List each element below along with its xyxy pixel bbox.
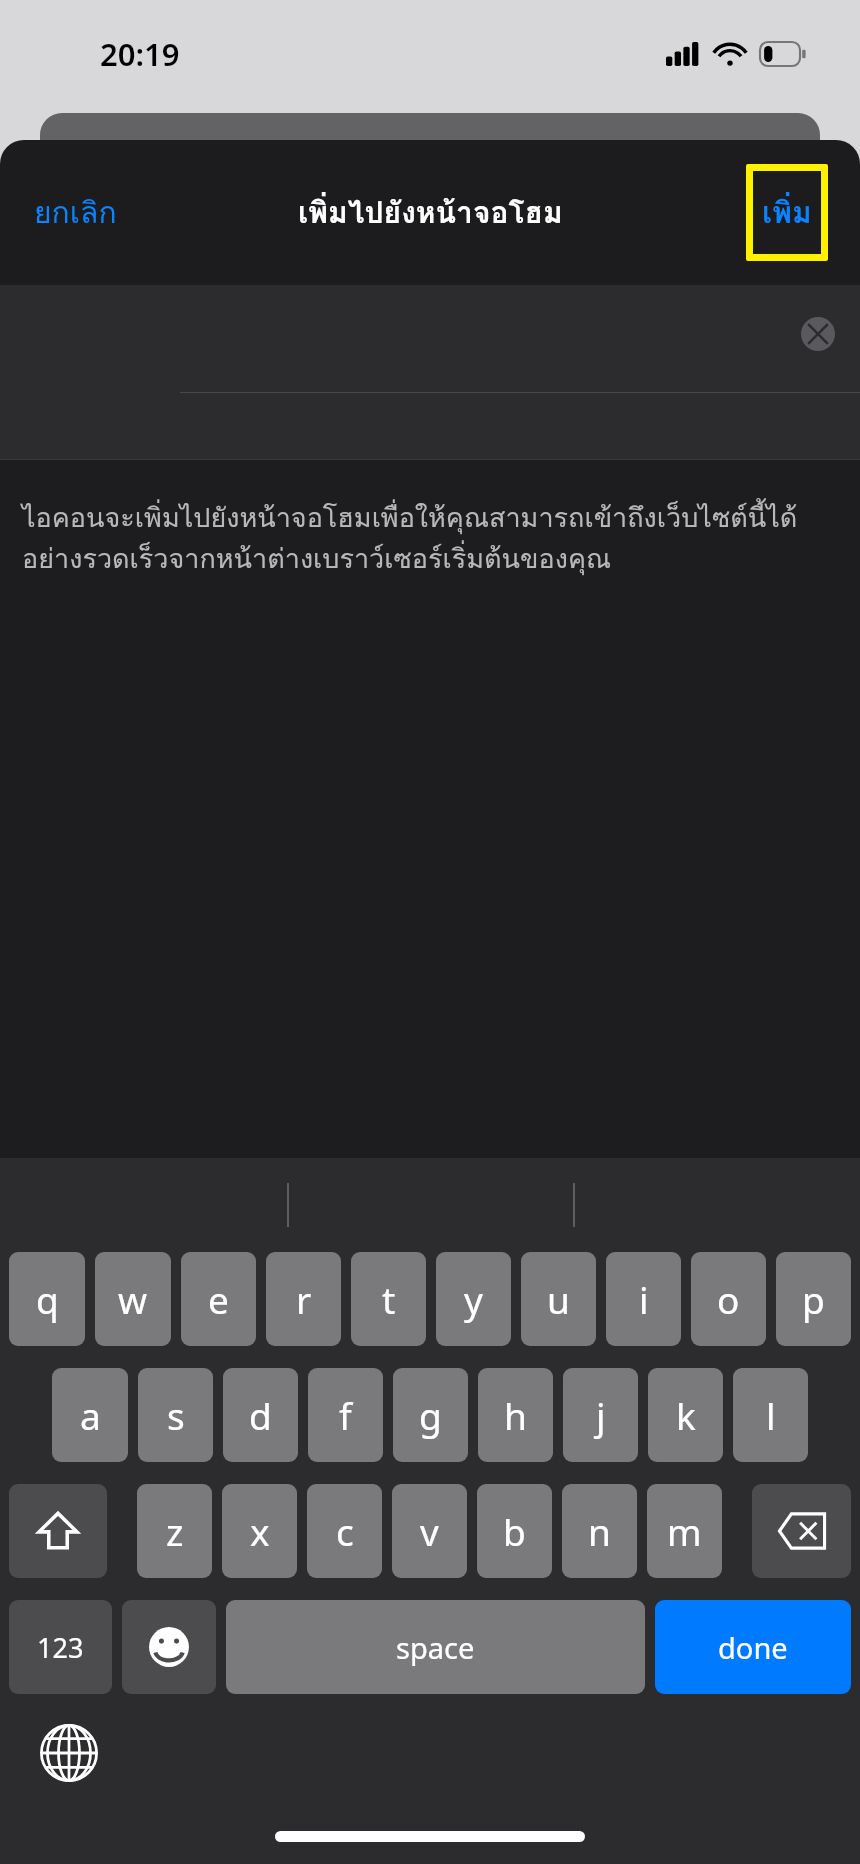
button[interactable]: Emoji xyxy=(122,1600,216,1694)
button[interactable]: z xyxy=(137,1484,212,1578)
staticText: o xyxy=(717,1274,740,1324)
staticText: ไอคอนจะเพิ่มไปยังหน้าจอโฮมเพื่อให้คุณสาม… xyxy=(22,496,838,580)
button[interactable]: t xyxy=(351,1252,426,1346)
button[interactable]: k xyxy=(648,1368,723,1462)
staticText: y xyxy=(464,1274,483,1324)
staticText: c xyxy=(336,1506,354,1556)
staticText: r xyxy=(296,1274,312,1324)
staticText: w xyxy=(118,1274,148,1324)
button[interactable]: Shift xyxy=(9,1484,107,1578)
button[interactable]: d xyxy=(223,1368,298,1462)
button[interactable]: e xyxy=(181,1252,256,1346)
staticText: h xyxy=(504,1390,527,1440)
staticText: k xyxy=(676,1390,696,1440)
button[interactable]: g xyxy=(393,1368,468,1462)
button[interactable]: c xyxy=(307,1484,382,1578)
staticText: m xyxy=(667,1506,702,1556)
button[interactable]: space xyxy=(226,1600,645,1694)
staticText: i xyxy=(639,1274,649,1324)
button[interactable]: u xyxy=(521,1252,596,1346)
staticText: 20:19 xyxy=(100,33,180,75)
staticText: s xyxy=(167,1390,185,1440)
button[interactable]: q xyxy=(9,1252,85,1346)
button[interactable]: i xyxy=(606,1252,681,1346)
staticText: n xyxy=(588,1506,611,1556)
staticText: d xyxy=(249,1390,272,1440)
button[interactable]: ยกเลิก xyxy=(16,177,135,249)
staticText: a xyxy=(80,1390,101,1440)
button[interactable]: b xyxy=(477,1484,552,1578)
staticText: t xyxy=(382,1274,396,1324)
button[interactable]: Backspace xyxy=(752,1484,851,1578)
staticText: เพิ่มไปยังหน้าจอโฮม xyxy=(298,189,563,237)
staticText: q xyxy=(36,1274,59,1324)
button[interactable]: j xyxy=(563,1368,638,1462)
staticText: z xyxy=(166,1506,184,1556)
staticText: b xyxy=(503,1506,526,1556)
button[interactable]: Clear text xyxy=(790,306,846,362)
staticText: 123 xyxy=(37,1629,84,1666)
button[interactable]: w xyxy=(95,1252,171,1346)
button[interactable]: Change keyboard language xyxy=(32,1716,106,1790)
staticText: j xyxy=(596,1390,606,1440)
staticText: v xyxy=(420,1506,439,1556)
button[interactable]: done xyxy=(655,1600,851,1694)
button[interactable]: 123 xyxy=(9,1600,112,1694)
button[interactable]: เพิ่ม xyxy=(753,171,821,254)
button[interactable]: s xyxy=(138,1368,213,1462)
staticText: p xyxy=(802,1274,825,1324)
staticText: done xyxy=(718,1628,788,1667)
button[interactable]: a xyxy=(52,1368,128,1462)
button[interactable]: f xyxy=(308,1368,383,1462)
button[interactable]: y xyxy=(436,1252,511,1346)
button[interactable]: r xyxy=(266,1252,341,1346)
staticText: f xyxy=(339,1390,352,1440)
button[interactable]: h xyxy=(478,1368,553,1462)
button[interactable]: v xyxy=(392,1484,467,1578)
button[interactable]: l xyxy=(733,1368,808,1462)
staticText: g xyxy=(419,1390,442,1440)
staticText: l xyxy=(766,1390,776,1440)
button[interactable]: p xyxy=(776,1252,851,1346)
staticText: e xyxy=(208,1274,229,1324)
staticText: x xyxy=(250,1506,270,1556)
button[interactable]: o xyxy=(691,1252,766,1346)
button[interactable]: m xyxy=(647,1484,722,1578)
staticText: u xyxy=(547,1274,570,1324)
staticText: space xyxy=(396,1628,475,1667)
staticText: เพิ่ม xyxy=(762,189,812,237)
staticText: ยกเลิก xyxy=(34,189,117,237)
button[interactable]: n xyxy=(562,1484,637,1578)
button[interactable]: x xyxy=(222,1484,297,1578)
